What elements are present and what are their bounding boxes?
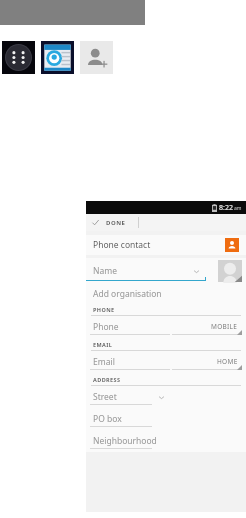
button[interactable]: Street [86,386,246,408]
staticText: ADDRESS [93,376,121,383]
staticText: Phone contact [93,239,151,251]
staticText: PHONE [93,306,115,313]
staticText: EMAIL [93,341,113,348]
staticText: am [234,205,242,212]
staticText: 8:22 [219,203,233,213]
staticText: HOME [217,357,238,366]
button[interactable]: MOBILE [172,316,242,338]
button[interactable]: Name [86,258,206,284]
staticText: Email [93,356,115,368]
button[interactable]: Add contact [80,41,113,74]
staticText: PO box [93,413,122,425]
button[interactable]: Contact photo [218,260,242,282]
button[interactable]: Contacts app [41,41,74,74]
staticText: Name [93,265,117,277]
staticText: MOBILE [211,322,238,331]
button[interactable]: Neighbourhood [86,430,246,452]
button[interactable]: DONE [86,214,246,231]
button[interactable]: HOME [172,351,242,373]
button[interactable]: Add organisation [86,284,246,303]
staticText: Neighbourhood [93,435,157,447]
button[interactable]: PO box [86,408,246,430]
staticText: Add organisation [93,288,162,300]
button[interactable]: Phone [86,316,172,338]
staticText: Phone [93,321,119,333]
staticText: Street [93,391,117,403]
staticText: DONE [106,219,126,227]
button[interactable]: Contact account [225,238,239,252]
button[interactable]: All apps [2,41,35,74]
button[interactable]: Email [86,351,172,373]
